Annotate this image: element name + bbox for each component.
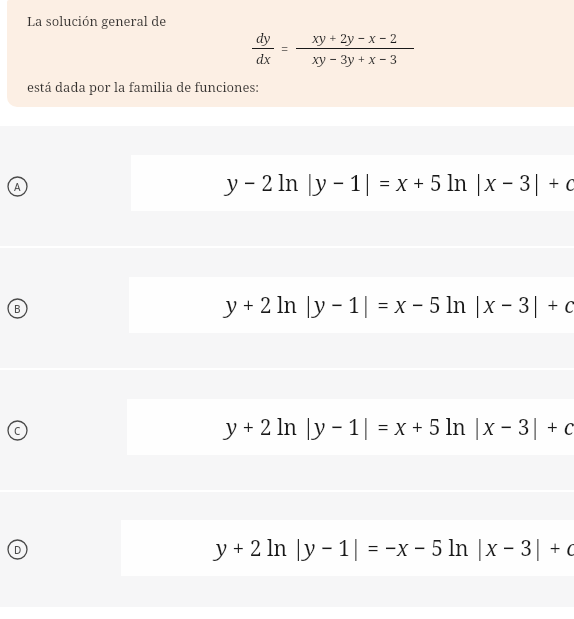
staticText: A bbox=[14, 180, 21, 194]
button[interactable]: A bbox=[0, 126, 574, 246]
staticText: está dada por la familia de funciones: bbox=[27, 78, 259, 96]
staticText: xy + 2y − x − 2 bbox=[312, 29, 398, 47]
staticText: y − 2 ln |y − 1| = x + 5 ln |x − 3| + c bbox=[227, 169, 574, 198]
staticText: D bbox=[14, 543, 22, 557]
button[interactable]: D bbox=[0, 492, 574, 607]
staticText: dx bbox=[256, 50, 271, 68]
staticText: dy bbox=[256, 29, 271, 47]
staticText: C bbox=[14, 424, 21, 438]
button[interactable]: B bbox=[0, 248, 574, 368]
staticText: y + 2 ln |y − 1| = x + 5 ln |x − 3| + c bbox=[226, 413, 574, 442]
staticText: y + 2 ln |y − 1| = x − 5 ln |x − 3| + c bbox=[226, 291, 574, 320]
staticText: La solución general de bbox=[27, 12, 167, 30]
staticText: y + 2 ln |y − 1| = −x − 5 ln |x − 3| + c bbox=[216, 534, 574, 563]
staticText: B bbox=[14, 302, 21, 316]
staticText: xy − 3y + x − 3 bbox=[312, 50, 398, 68]
staticText: = bbox=[281, 40, 289, 58]
button[interactable]: C bbox=[0, 370, 574, 490]
